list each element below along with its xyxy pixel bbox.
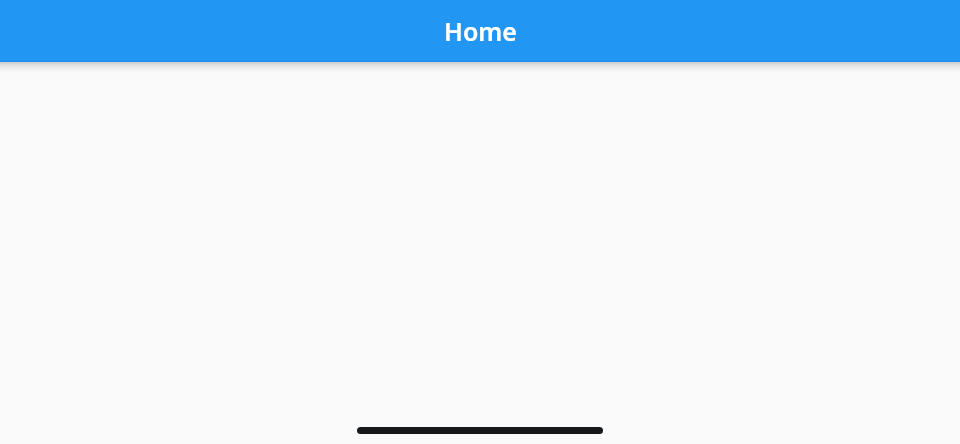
button[interactable]: Home: [0, 0, 960, 62]
other: Home: [357, 427, 603, 434]
staticText: Home: [444, 14, 517, 48]
